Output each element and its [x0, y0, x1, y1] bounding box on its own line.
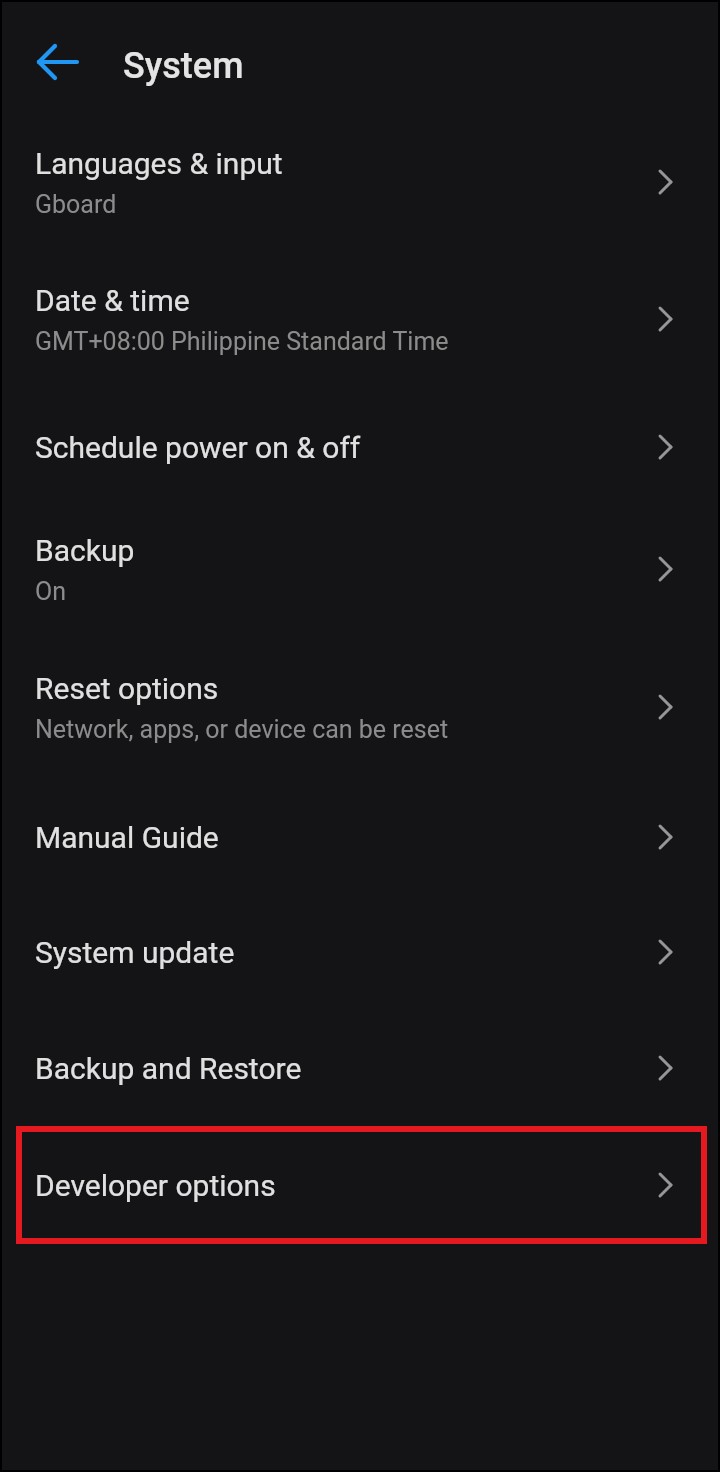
- staticText: On: [35, 577, 67, 606]
- staticText: Schedule power on & off: [35, 430, 361, 465]
- staticText: System: [123, 45, 244, 87]
- button[interactable]: Manual Guide: [2, 797, 718, 877]
- staticText: System update: [35, 935, 235, 970]
- staticText: Reset options: [35, 671, 219, 706]
- staticText: GMT+08:00 Philippine Standard Time: [35, 327, 449, 356]
- staticText: Network, apps, or device can be reset: [35, 715, 449, 744]
- button[interactable]: Backup and Restore: [2, 1028, 718, 1108]
- button[interactable]: Schedule power on & off: [2, 407, 718, 487]
- button[interactable]: Backup: [2, 519, 718, 619]
- button[interactable]: Developer options: [2, 1145, 718, 1225]
- button[interactable]: System update: [2, 912, 718, 992]
- staticText: Languages & input: [35, 146, 283, 181]
- button[interactable]: [26, 39, 90, 85]
- staticText: Backup and Restore: [35, 1051, 302, 1086]
- button[interactable]: Reset options: [2, 657, 718, 757]
- staticText: Gboard: [35, 190, 117, 219]
- staticText: Developer options: [35, 1168, 276, 1203]
- button[interactable]: Languages & input: [2, 132, 718, 232]
- staticText: Date & time: [35, 283, 190, 318]
- staticText: Backup: [35, 533, 135, 568]
- button[interactable]: Date & time: [2, 269, 718, 369]
- staticText: Manual Guide: [35, 820, 219, 855]
